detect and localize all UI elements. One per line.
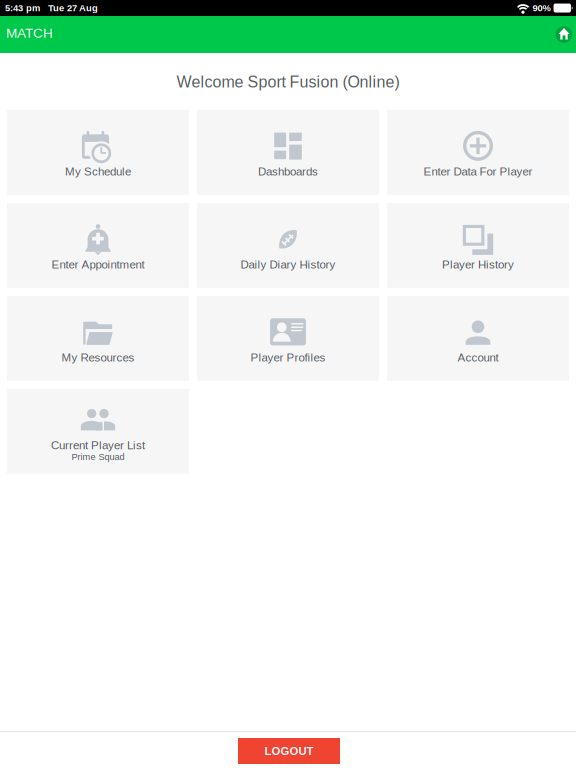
staticText: Enter Appointment	[51, 258, 144, 271]
staticText: MATCH	[6, 25, 53, 41]
button[interactable]: Current Player List	[7, 389, 189, 474]
button[interactable]: Player Profiles	[197, 296, 379, 381]
staticText: My Resources	[61, 351, 134, 364]
button[interactable]: My Schedule	[7, 110, 189, 195]
staticText: Account	[457, 351, 498, 364]
staticText: Welcome Sport Fusion (Online)	[176, 73, 399, 91]
staticText: Prime Squad	[71, 452, 124, 462]
button[interactable]: My Resources	[7, 296, 189, 381]
staticText: 5:43 pm	[5, 3, 40, 13]
staticText: Current Player List	[51, 439, 145, 451]
button[interactable]: LOGOUT	[237, 738, 339, 764]
staticText: Enter Data For Player	[423, 165, 532, 178]
button[interactable]: Player History	[387, 203, 569, 288]
staticText: Tue 27 Aug	[48, 3, 98, 13]
staticText: 90%	[532, 3, 550, 13]
staticText: Daily Diary History	[240, 258, 335, 271]
staticText: My Schedule	[65, 165, 131, 178]
staticText: Player History	[442, 258, 514, 271]
button[interactable]: Enter Appointment	[7, 203, 189, 288]
button[interactable]: Account	[387, 296, 569, 381]
button[interactable]: Daily Diary History	[197, 203, 379, 288]
staticText: Dashboards	[258, 165, 318, 178]
button[interactable]: Home	[552, 16, 576, 53]
staticText: Player Profiles	[250, 351, 325, 364]
button[interactable]: Enter Data For Player	[387, 110, 569, 195]
staticText: LOGOUT	[264, 745, 313, 757]
button[interactable]: Dashboards	[197, 110, 379, 195]
